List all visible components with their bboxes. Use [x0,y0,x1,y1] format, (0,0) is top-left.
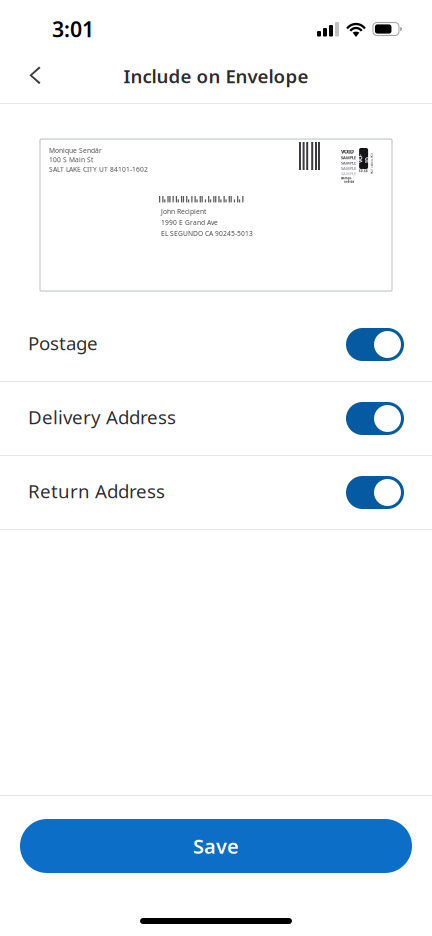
staticText: SAMPLE [341,160,356,166]
staticText: VOID [359,151,368,166]
button[interactable]: Back [13,53,57,97]
staticText: SAMPLE [341,166,356,171]
button[interactable]: Return Address [0,456,432,529]
staticText: Include on Envelope [123,64,308,88]
staticText: Return Address [28,479,165,503]
staticText: stamps [341,176,351,180]
staticText: USA Forever USA [361,162,382,165]
staticText: 100 S Main St [49,155,93,164]
staticText: 3:01 [52,15,94,43]
staticText: Save [193,833,239,859]
staticText: 1990 E Grand Ave [161,218,218,227]
staticText: SAMPLE [341,171,356,176]
staticText: endicia [343,180,354,183]
button[interactable]: Delivery Address [0,382,432,455]
staticText: Postage [28,331,98,355]
button[interactable]: Postage [0,308,432,381]
staticText: Monique Sendär [49,146,102,155]
staticText: John Recipient [161,207,206,216]
staticText: VOID [341,148,354,155]
staticText: EL SEGUNDO CA 90245-5013 [161,229,253,238]
staticText: Delivery Address [28,405,176,429]
staticText: SAMPLE [341,155,356,160]
staticText: SALT LAKE CITY UT 84101-1602 [49,165,148,174]
button[interactable]: Save [20,819,412,873]
staticText: $0.68 [359,169,368,173]
